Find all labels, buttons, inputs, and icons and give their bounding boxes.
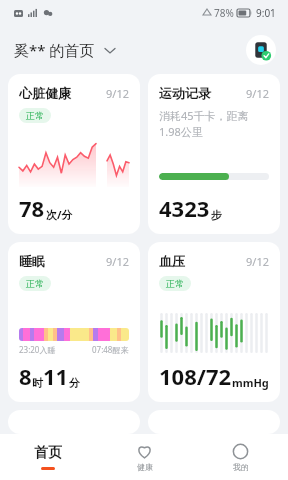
staticText: 奚** 的首页 bbox=[14, 40, 95, 60]
staticText: 78% bbox=[214, 6, 234, 20]
staticText: 运动记录 bbox=[159, 85, 211, 101]
button[interactable]: 运动记录 bbox=[148, 74, 280, 234]
button[interactable]: 首页 bbox=[0, 434, 96, 480]
staticText: 我的 bbox=[233, 462, 249, 472]
button[interactable]: Device status bbox=[246, 35, 276, 65]
staticText: 次/分 bbox=[46, 207, 73, 222]
staticText: 4323 bbox=[159, 193, 210, 223]
staticText: 正常 bbox=[166, 278, 184, 289]
staticText: 8 bbox=[19, 361, 32, 391]
staticText: 血压 bbox=[159, 253, 185, 269]
staticText: 07:48醒来 bbox=[92, 344, 129, 355]
staticText: 108/72 bbox=[159, 361, 232, 391]
staticText: 健康 bbox=[137, 462, 153, 472]
staticText: 步 bbox=[211, 208, 222, 222]
staticText: 正常 bbox=[26, 110, 44, 121]
staticText: 时 bbox=[32, 376, 43, 390]
staticText: 11 bbox=[43, 361, 69, 391]
staticText: 首页 bbox=[34, 444, 62, 462]
staticText: 9/12 bbox=[246, 86, 269, 101]
staticText: 9:01 bbox=[256, 6, 276, 20]
staticText: 9/12 bbox=[106, 86, 129, 101]
button[interactable]: 我的 bbox=[192, 434, 288, 480]
button[interactable]: 健康 bbox=[96, 434, 192, 480]
staticText: 消耗45千卡，距离 1.98公里 bbox=[159, 108, 249, 139]
button[interactable]: 睡眠 bbox=[8, 242, 140, 402]
staticText: 78 bbox=[19, 193, 45, 223]
button[interactable]: 血压 bbox=[148, 242, 280, 402]
button[interactable]: 心脏健康 bbox=[8, 74, 140, 234]
staticText: 正常 bbox=[26, 278, 44, 289]
staticText: 心脏健康 bbox=[19, 85, 71, 101]
staticText: 9/12 bbox=[106, 254, 129, 269]
staticText: 睡眠 bbox=[19, 253, 45, 269]
staticText: 23:20入睡 bbox=[19, 344, 56, 355]
staticText: 分 bbox=[69, 376, 80, 390]
staticText: 9/12 bbox=[246, 254, 269, 269]
staticText: mmHg bbox=[232, 375, 269, 390]
button[interactable]: 奚** 的首页 bbox=[14, 40, 115, 60]
